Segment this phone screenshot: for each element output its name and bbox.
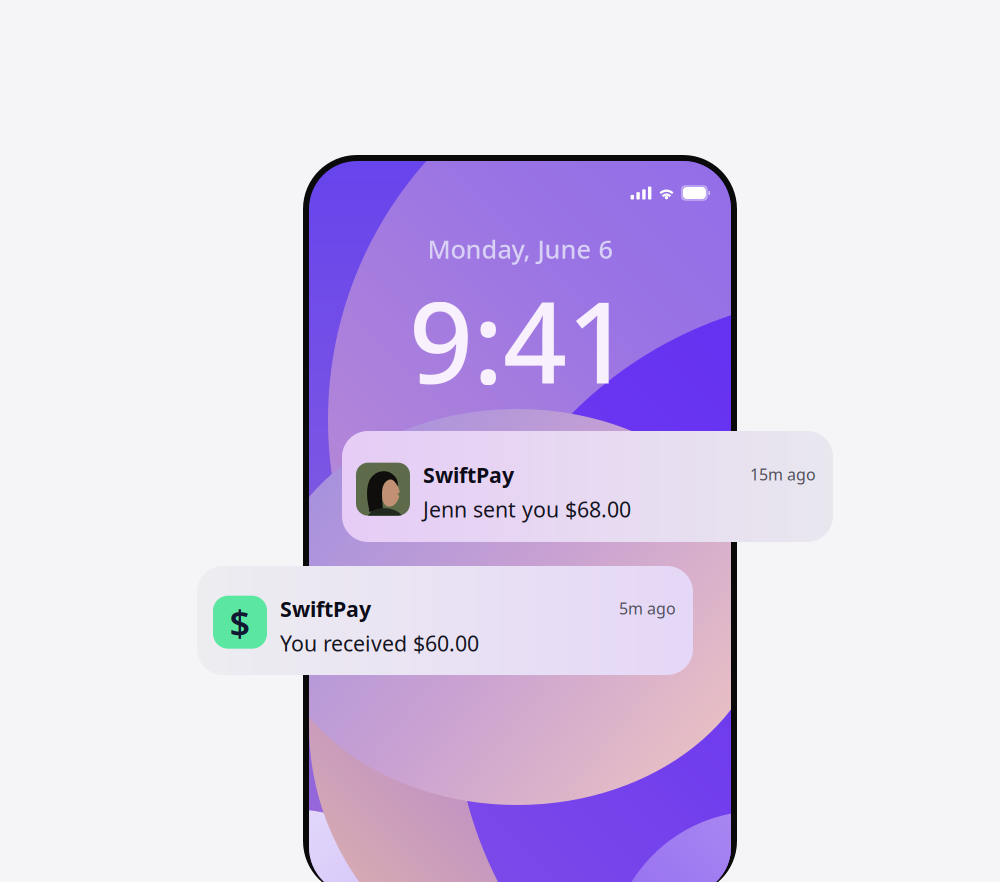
button[interactable]: SwiftPay [342,431,833,542]
staticText: 15m ago [750,464,816,485]
staticText: $ [229,598,250,646]
staticText: 5m ago [619,598,676,619]
staticText: You received $60.00 [280,629,479,657]
button[interactable]: $ [197,566,693,675]
staticText: SwiftPay [423,461,514,489]
staticText: SwiftPay [280,595,371,623]
staticText: 9:41 [409,266,631,414]
staticText: Jenn sent you $68.00 [423,495,631,523]
staticText: Monday, June 6 [427,232,612,266]
